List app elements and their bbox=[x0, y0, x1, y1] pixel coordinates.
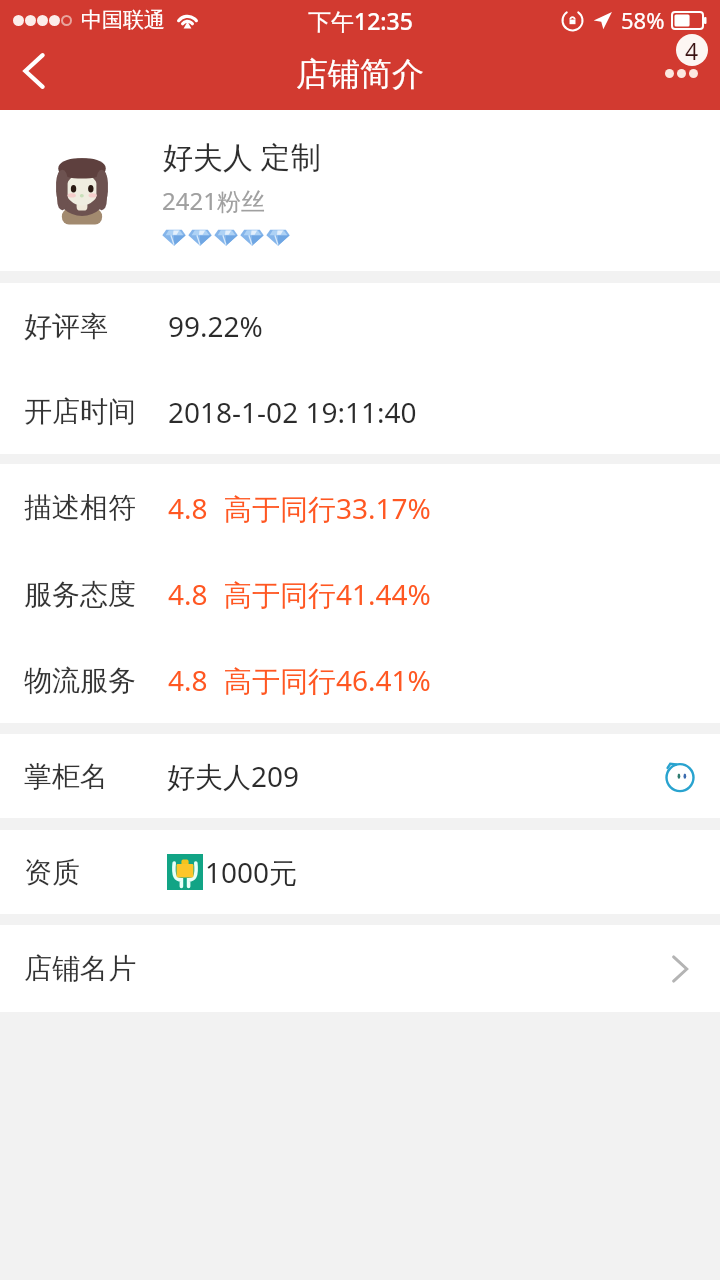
staticText: 店铺名片 bbox=[24, 951, 136, 986]
staticText: 好评率 bbox=[24, 309, 108, 344]
staticText: 58% bbox=[621, 5, 665, 35]
staticText: 服务态度 bbox=[24, 577, 136, 612]
staticText: 高于同行33.17% bbox=[224, 489, 431, 527]
staticText: 4.8 bbox=[168, 661, 208, 699]
button[interactable]: 店铺名片 bbox=[0, 925, 720, 1012]
button[interactable]: 好夫人 定制 bbox=[0, 110, 720, 271]
button[interactable]: 描述相符 bbox=[0, 464, 720, 551]
staticText: 4.8 bbox=[168, 489, 208, 527]
button[interactable]: 物流服务 bbox=[0, 637, 720, 723]
staticText: 好夫人 定制 bbox=[163, 136, 321, 177]
button[interactable]: Chat with seller bbox=[652, 748, 708, 804]
staticText: 开店时间 bbox=[24, 394, 136, 429]
button[interactable]: Back bbox=[0, 38, 68, 106]
staticText: 下午12:35 bbox=[308, 5, 413, 36]
staticText: 资质 bbox=[24, 855, 80, 890]
staticText: 99.22% bbox=[168, 307, 263, 345]
staticText: 4 bbox=[685, 35, 699, 66]
staticText: 2018-1-02 19:11:40 bbox=[168, 393, 417, 431]
staticText: 高于同行41.44% bbox=[224, 575, 431, 613]
button[interactable]: 好评率 bbox=[0, 283, 720, 369]
staticText: 2421粉丝 bbox=[162, 184, 265, 217]
staticText: 掌柜名 bbox=[24, 759, 108, 794]
staticText: 4.8 bbox=[168, 575, 208, 613]
button[interactable]: 资质 bbox=[0, 830, 720, 914]
button[interactable]: 开店时间 bbox=[0, 369, 720, 454]
button[interactable]: 掌柜名 bbox=[0, 734, 720, 818]
button[interactable]: 服务态度 bbox=[0, 551, 720, 637]
button[interactable]: More options bbox=[648, 30, 712, 88]
staticText: 中国联通 bbox=[81, 7, 165, 33]
staticText: 物流服务 bbox=[24, 663, 136, 698]
staticText: 好夫人209 bbox=[167, 757, 300, 795]
staticText: 描述相符 bbox=[24, 490, 136, 525]
staticText: 高于同行46.41% bbox=[224, 661, 431, 699]
staticText: 店铺简介 bbox=[296, 54, 424, 94]
staticText: 1000元 bbox=[205, 853, 298, 891]
